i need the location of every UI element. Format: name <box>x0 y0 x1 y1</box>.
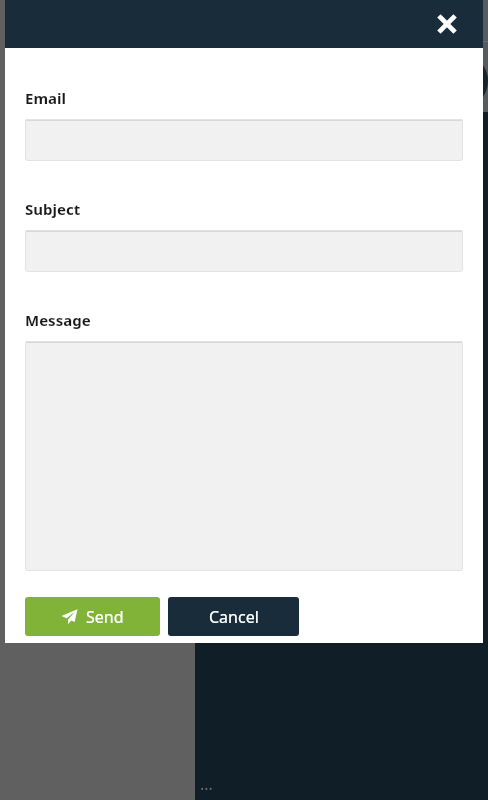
staticText: ... <box>200 773 213 795</box>
button[interactable]: Close <box>429 6 465 42</box>
button[interactable]: Menu <box>438 118 478 158</box>
button[interactable] <box>25 230 463 272</box>
staticText: Cancel <box>209 606 259 628</box>
staticText: Email <box>25 88 66 108</box>
staticText: Subject <box>25 199 81 219</box>
staticText: Send <box>86 606 124 628</box>
staticText: Message <box>25 310 91 330</box>
button[interactable] <box>25 119 463 161</box>
button[interactable]: Send <box>25 597 160 636</box>
button[interactable]: Cancel <box>168 597 299 636</box>
button[interactable]: Send message <box>432 53 488 109</box>
